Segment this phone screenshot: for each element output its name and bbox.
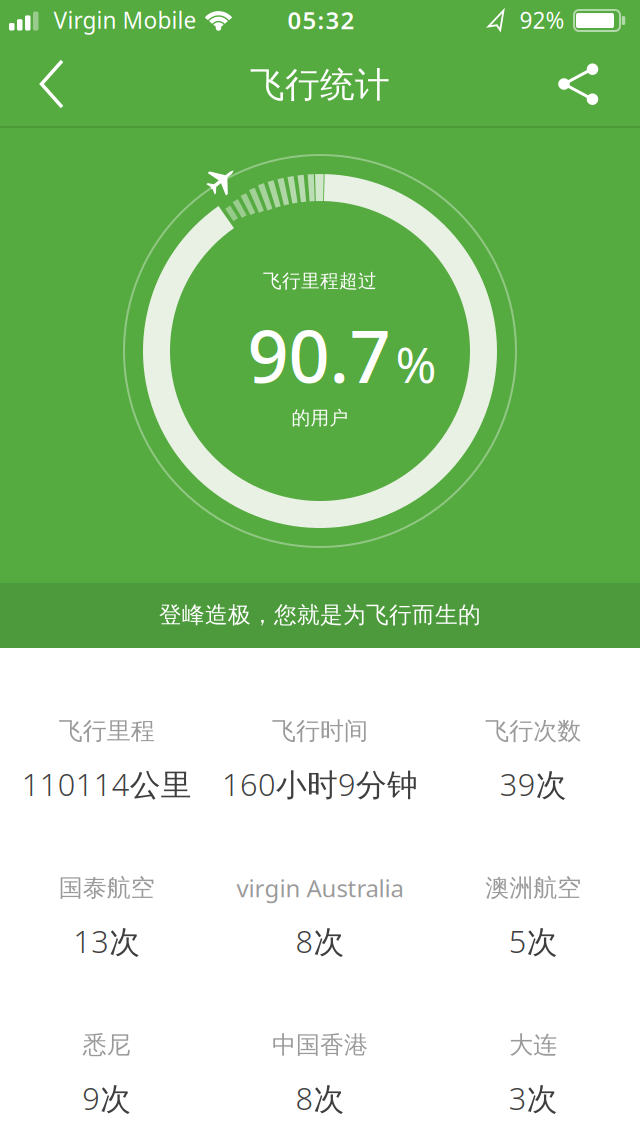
button[interactable]: Share: [545, 42, 611, 126]
staticText: 92%: [519, 5, 564, 35]
staticText: 的用户: [291, 406, 348, 429]
staticText: 160小时9分钟: [222, 764, 418, 804]
staticText: 8次: [295, 1078, 344, 1118]
staticText: Virgin Mobile: [53, 5, 196, 35]
staticText: 9次: [82, 1078, 131, 1118]
staticText: 39次: [500, 764, 567, 804]
staticText: 90.7: [247, 307, 390, 403]
staticText: 登峰造极，您就是为飞行而生的: [159, 601, 481, 629]
staticText: %: [395, 331, 436, 396]
staticText: 飞行时间: [272, 716, 368, 746]
staticText: 悉尼: [83, 1030, 131, 1060]
staticText: 5次: [509, 921, 558, 961]
staticText: 3次: [509, 1078, 558, 1118]
staticText: 大连: [509, 1030, 557, 1060]
staticText: 飞行里程超过: [263, 269, 377, 292]
staticText: 110114公里: [22, 764, 192, 804]
staticText: 8次: [295, 921, 344, 961]
staticText: 飞行里程: [59, 716, 155, 746]
staticText: 澳洲航空: [485, 873, 581, 903]
staticText: 05:32: [287, 4, 354, 36]
button[interactable]: Back: [0, 42, 84, 126]
staticText: virgin Australia: [236, 872, 403, 904]
staticText: 飞行统计: [250, 64, 390, 106]
staticText: 国泰航空: [59, 873, 155, 903]
staticText: 13次: [73, 921, 140, 961]
staticText: 中国香港: [272, 1030, 368, 1060]
staticText: 飞行次数: [485, 716, 581, 746]
